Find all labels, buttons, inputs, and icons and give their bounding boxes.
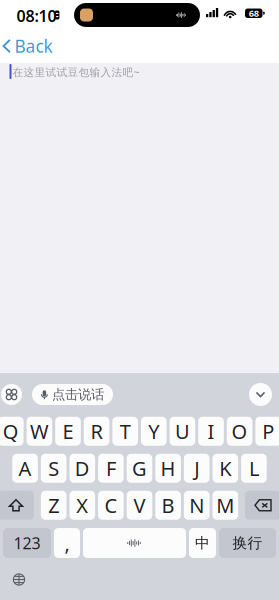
staticText: 点击说话	[52, 386, 104, 403]
staticText: T	[120, 418, 131, 445]
staticText: 08:10	[16, 5, 56, 26]
button[interactable]: P	[255, 417, 279, 446]
button[interactable]: W	[27, 417, 52, 446]
staticText: R	[91, 418, 103, 445]
button[interactable]: G	[127, 454, 152, 483]
button[interactable]: I	[198, 417, 224, 446]
staticText: K	[219, 455, 231, 482]
button[interactable]: C	[98, 491, 124, 520]
staticText: 中	[195, 534, 210, 552]
button[interactable]: M	[212, 491, 238, 520]
staticText: W	[30, 418, 49, 445]
button[interactable]: V	[127, 491, 152, 520]
staticText: G	[132, 455, 147, 482]
button[interactable]: Keyboard panels	[1, 384, 22, 405]
staticText: Z	[48, 492, 59, 519]
button[interactable]: B	[155, 491, 181, 520]
staticText: M	[216, 492, 234, 519]
button[interactable]: R	[84, 417, 109, 446]
staticText: 在这里试试豆包输入法吧~	[12, 65, 139, 79]
staticText: Y	[148, 418, 159, 445]
staticText: 换行	[232, 534, 262, 552]
staticText: F	[106, 455, 116, 482]
staticText: Q	[3, 418, 19, 445]
staticText: B	[162, 492, 175, 519]
button[interactable]: N	[184, 491, 209, 520]
button[interactable]: K	[212, 454, 238, 483]
button[interactable]: Y	[141, 417, 167, 446]
staticText: O	[232, 418, 248, 445]
staticText: 68	[249, 7, 259, 19]
button[interactable]: J	[184, 454, 209, 483]
button[interactable]: Back	[0, 30, 60, 61]
staticText: C	[104, 492, 117, 519]
button[interactable]: Z	[41, 491, 66, 520]
staticText: A	[19, 455, 32, 482]
staticText: H	[161, 455, 176, 482]
button[interactable]: T	[112, 417, 138, 446]
staticText: ,	[64, 530, 69, 556]
button[interactable]: E	[55, 417, 81, 446]
button[interactable]: S	[41, 454, 66, 483]
staticText: 123	[13, 532, 40, 554]
button[interactable]: Switch keyboard	[6, 566, 32, 592]
staticText: I	[207, 418, 214, 445]
button[interactable]: Q	[0, 417, 24, 446]
button[interactable]: Space	[83, 528, 186, 558]
button[interactable]: X	[69, 491, 95, 520]
staticText: Back	[14, 34, 52, 57]
staticText: N	[189, 492, 204, 519]
staticText: L	[249, 455, 259, 482]
staticText: P	[262, 418, 274, 445]
button[interactable]: 中	[189, 528, 216, 558]
staticText: V	[133, 492, 145, 519]
button[interactable]: F	[98, 454, 124, 483]
staticText: X	[76, 492, 88, 519]
button[interactable]: Shift	[0, 491, 34, 520]
staticText: S	[48, 455, 59, 482]
button[interactable]: 换行	[219, 528, 276, 558]
button[interactable]: H	[155, 454, 181, 483]
button[interactable]: O	[227, 417, 252, 446]
button[interactable]: 123	[3, 528, 51, 558]
button[interactable]: L	[241, 454, 267, 483]
button[interactable]: Delete	[245, 491, 279, 520]
staticText: D	[75, 455, 90, 482]
button[interactable]: ,	[54, 528, 80, 558]
button[interactable]: D	[69, 454, 95, 483]
button[interactable]: Hide keyboard	[249, 383, 272, 406]
button[interactable]: A	[12, 454, 38, 483]
staticText: J	[194, 455, 199, 482]
staticText: U	[175, 418, 190, 445]
button[interactable]: 点击说话	[32, 384, 113, 405]
button[interactable]: U	[170, 417, 195, 446]
staticText: E	[62, 418, 73, 445]
